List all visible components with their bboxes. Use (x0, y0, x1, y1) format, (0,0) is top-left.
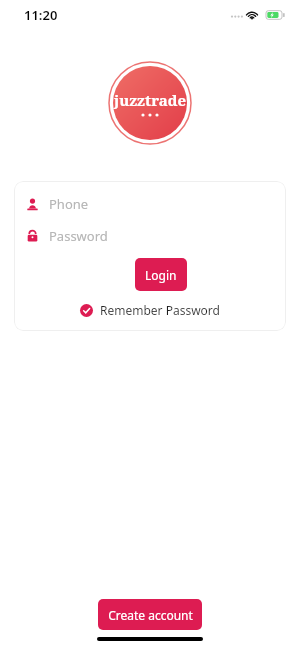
other: Home indicator (97, 637, 203, 641)
staticText: 11:20 (24, 6, 58, 24)
button[interactable]: Password (14, 222, 286, 250)
button[interactable]: Login (135, 258, 187, 291)
staticText: Login (145, 267, 177, 283)
staticText: juzztrade (114, 90, 186, 110)
staticText: Create account (108, 607, 193, 623)
staticText: Remember Password (100, 302, 220, 318)
button[interactable]: Remember Password (76, 300, 224, 320)
staticText: Phone (49, 195, 89, 213)
button[interactable]: Create account (98, 599, 202, 630)
staticText: Password (49, 227, 108, 245)
button[interactable]: Phone (14, 190, 286, 218)
